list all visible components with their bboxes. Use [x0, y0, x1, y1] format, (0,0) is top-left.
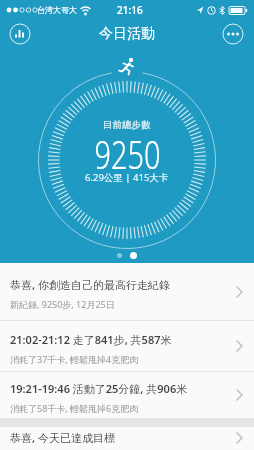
staticText: 恭喜, 今天已達成目標 — [10, 430, 236, 445]
staticText: 目前總步數 — [103, 119, 151, 131]
staticText: 消耗了37千卡, 輕鬆甩掉4克肥肉 — [10, 353, 139, 365]
button[interactable] — [222, 23, 244, 45]
button[interactable]: 21:02-21:12 走了841步, 共587米 — [0, 321, 254, 371]
button[interactable]: 19:21-19:46 活動了25分鐘, 共906米 — [0, 372, 254, 418]
staticText: 21:02-21:12 走了841步, 共587米 — [10, 332, 172, 347]
staticText: 台湾大哥大 — [37, 5, 77, 15]
staticText: 6.29公里 | 415大卡 — [85, 171, 169, 184]
staticText: 21:16 — [117, 3, 143, 17]
staticText: 恭喜, 你創造自己的最高行走紀錄 — [10, 277, 170, 292]
staticText: 新紀錄, 9250步, 12月25日 — [10, 298, 115, 310]
staticText: 9250 — [94, 128, 160, 180]
button[interactable] — [9, 23, 31, 45]
button[interactable]: 恭喜, 你創造自己的最高行走紀錄 — [0, 263, 254, 320]
staticText: 今日活動 — [99, 25, 155, 43]
staticText: 消耗了58千卡, 輕鬆甩掉6克肥肉 — [10, 402, 139, 414]
staticText: 19:21-19:46 活動了25分鐘, 共906米 — [10, 381, 188, 396]
button[interactable]: 恭喜, 今天已達成目標 — [0, 427, 254, 450]
